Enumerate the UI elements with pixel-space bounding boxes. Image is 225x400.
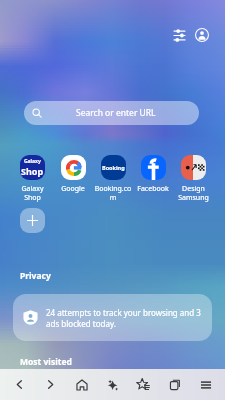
staticText: 24 attempts to track your browsing and 3…: [46, 307, 202, 329]
button[interactable]: Search or enter URL: [24, 101, 199, 125]
button[interactable]: Facebook: [133, 155, 173, 194]
staticText: Booking: [102, 164, 125, 171]
button[interactable]: Add shortcut: [20, 208, 45, 233]
staticText: Search or enter URL: [76, 107, 156, 119]
button[interactable]: Tabs: [159, 369, 190, 400]
button[interactable]: Back: [4, 369, 35, 400]
staticText: Most visited: [20, 356, 72, 368]
button[interactable]: Home: [66, 369, 97, 400]
button[interactable]: Design Samsung: [173, 155, 213, 202]
button[interactable]: Galaxy: [12, 155, 53, 202]
button[interactable]: Forward: [35, 369, 66, 400]
staticText: Facebook: [137, 184, 169, 194]
button[interactable]: Bookmarks: [128, 369, 159, 400]
staticText: Design Samsung: [178, 184, 209, 202]
staticText: Galaxy Shop: [21, 184, 44, 202]
staticText: Shop: [21, 165, 44, 177]
button[interactable]: AI assistant: [97, 369, 128, 400]
button[interactable]: Booking: [93, 155, 133, 202]
staticText: Google: [61, 184, 85, 194]
button[interactable]: Settings: [167, 23, 191, 47]
staticText: Booking.com: [93, 184, 133, 202]
button[interactable]: Account: [190, 23, 214, 47]
button[interactable]: 24 attempts to track your browsing and 3…: [13, 294, 212, 341]
staticText: Privacy: [20, 270, 51, 282]
button[interactable]: Google: [53, 155, 93, 194]
button[interactable]: Menu: [190, 369, 221, 400]
staticText: Galaxy: [24, 158, 41, 165]
